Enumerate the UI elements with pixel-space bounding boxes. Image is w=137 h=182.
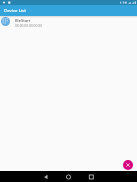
button[interactable]: BleStart — [0, 17, 137, 30]
staticText: 00:00:00:00:00:00 — [15, 23, 43, 27]
staticText: BleStart — [15, 18, 31, 23]
button[interactable]: Add device — [123, 160, 133, 170]
staticText: Device List — [4, 7, 26, 13]
